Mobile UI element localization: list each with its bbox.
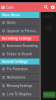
staticText: Memory Settings [7,84,32,88]
button[interactable]: Link To Dropbox [0,90,39,98]
button[interactable]: Notifications [0,73,39,82]
button[interactable]: Record [43,92,56,98]
button[interactable]: Upgrade to Premium [0,27,39,35]
staticText: Main Menu [2,13,20,17]
button[interactable]: Home [0,18,39,27]
button[interactable]: Menu [0,3,6,12]
staticText: Link To Dropbox [7,92,32,96]
button[interactable]: Search [43,3,49,12]
staticText: Recording Settings [2,36,31,40]
button[interactable]: Automatic Recording [0,42,39,50]
button[interactable]: Pin Protection [0,65,39,73]
button[interactable]: Settings [49,3,56,12]
staticText: Automatic Recording [7,44,38,48]
staticText: Pin Protection [7,67,28,71]
button[interactable]: Memory Settings [0,82,39,90]
staticText: General Settings [2,60,27,64]
button[interactable]: Shake to Record [0,50,39,58]
staticText: Notifications [7,75,25,79]
staticText: Recent Calls [43,14,56,18]
staticText: Shake to Record [7,52,32,56]
staticText: Home [7,21,16,25]
staticText: Record [44,93,54,97]
staticText: Upgrade to Premium [7,29,38,33]
staticText: Calls [6,5,14,10]
